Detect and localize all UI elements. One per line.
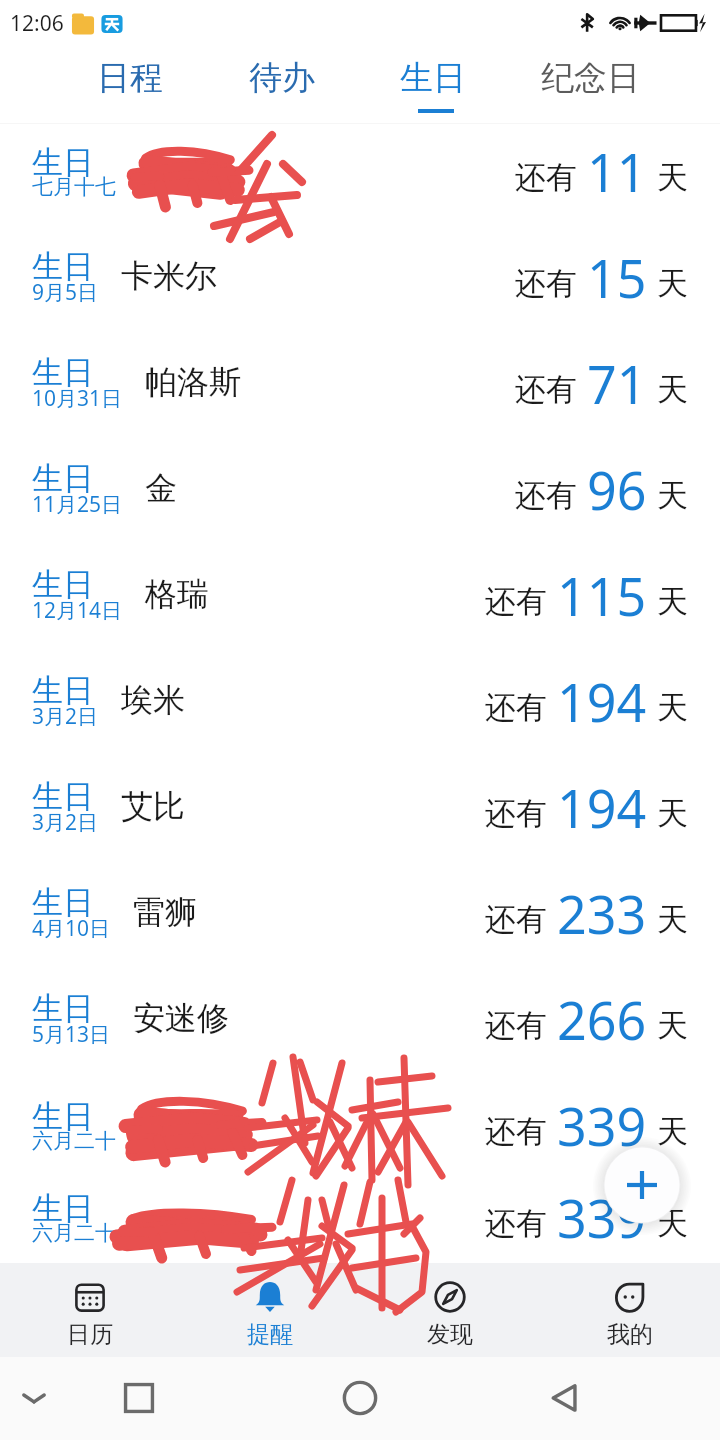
button[interactable]: 生日 <box>0 866 720 972</box>
staticText: 9月5日 <box>32 278 99 307</box>
button[interactable]: 我的 <box>540 1263 720 1357</box>
button[interactable]: 生日 <box>0 230 720 336</box>
button[interactable]: Home <box>330 1368 390 1428</box>
staticText: 格瑞 <box>145 574 209 614</box>
staticText: 天 <box>657 794 688 833</box>
staticText: 纪念日 <box>541 57 640 99</box>
staticText: 卡米尔 <box>121 256 217 296</box>
staticText: 生日 <box>32 247 94 286</box>
staticText: 金 <box>145 468 177 508</box>
button[interactable]: 生日 <box>0 654 720 760</box>
staticText: 生日 <box>32 777 94 816</box>
staticText: 10月31日 <box>32 384 123 413</box>
staticText: 天 <box>657 1204 688 1243</box>
staticText: 233 <box>557 878 647 949</box>
staticText: 还有 <box>485 582 547 621</box>
staticText: 天 <box>657 688 688 727</box>
staticText: 还有 <box>485 1112 547 1151</box>
button[interactable]: 生日 <box>0 760 720 866</box>
button[interactable]: Add <box>596 1139 688 1231</box>
staticText: 12:06 <box>10 9 64 38</box>
staticText: 生日 <box>400 57 466 99</box>
staticText: 天 <box>657 370 688 409</box>
staticText: 3月2日 <box>32 702 99 731</box>
button[interactable]: 生日 <box>0 124 720 230</box>
button[interactable]: 生日 <box>0 1078 720 1184</box>
staticText: 11 <box>587 136 647 207</box>
staticText: 安迷修 <box>133 998 229 1038</box>
staticText: 帕洛斯 <box>145 362 241 402</box>
staticText: 艾比 <box>121 786 185 826</box>
staticText: 266 <box>557 984 647 1055</box>
button[interactable]: Recent apps <box>109 1368 169 1428</box>
staticText: 生日 <box>32 1189 94 1228</box>
staticText: 天 <box>657 476 688 515</box>
staticText: 六月二十 <box>32 1128 116 1154</box>
staticText: 还有 <box>485 688 547 727</box>
button[interactable]: 生日 <box>0 442 720 548</box>
staticText: 生日 <box>32 1097 94 1136</box>
button[interactable]: 生日 <box>0 548 720 654</box>
staticText: 生日 <box>32 671 94 710</box>
staticText: 339 <box>557 1182 647 1253</box>
button[interactable]: Hide keyboard <box>4 1368 64 1428</box>
staticText: 还有 <box>485 1006 547 1045</box>
staticText: 提醒 <box>247 1320 293 1349</box>
staticText: 11月25日 <box>32 490 123 519</box>
staticText: 71 <box>587 348 647 419</box>
button[interactable]: 生日 <box>0 336 720 442</box>
staticText: 日历 <box>67 1320 113 1349</box>
staticText: 还有 <box>515 264 577 303</box>
button[interactable]: 生日 <box>0 1184 720 1263</box>
staticText: 194 <box>557 772 647 843</box>
staticText: 4月10日 <box>32 914 111 943</box>
staticText: 七月十七 <box>32 174 116 200</box>
staticText: 雷狮 <box>133 892 197 932</box>
button[interactable]: 提醒 <box>180 1263 360 1357</box>
staticText: 生日 <box>32 883 94 922</box>
staticText: 3月2日 <box>32 808 99 837</box>
staticText: 96 <box>587 454 647 525</box>
staticText: 六月二十 <box>32 1220 116 1246</box>
button[interactable]: 纪念日 <box>515 46 665 124</box>
button[interactable]: 日历 <box>0 1263 180 1357</box>
staticText: 115 <box>557 560 647 631</box>
staticText: 还有 <box>515 476 577 515</box>
staticText: 生日 <box>32 353 94 392</box>
staticText: 生日 <box>32 989 94 1028</box>
staticText: 天 <box>657 158 688 197</box>
staticText: 我的 <box>607 1320 653 1349</box>
button[interactable]: 生日 <box>0 972 720 1078</box>
staticText: 埃米 <box>121 680 185 720</box>
button[interactable]: 生日 <box>358 46 508 124</box>
button[interactable]: Back <box>536 1368 596 1428</box>
staticText: 194 <box>557 666 647 737</box>
staticText: 5月13日 <box>32 1020 111 1049</box>
staticText: 15 <box>587 242 647 313</box>
staticText: 还有 <box>485 900 547 939</box>
button[interactable]: 发现 <box>360 1263 540 1357</box>
staticText: 天 <box>657 1112 688 1151</box>
staticText: 生日 <box>32 565 94 604</box>
staticText: 生日 <box>32 143 94 182</box>
staticText: 还有 <box>515 370 577 409</box>
staticText: 天 <box>657 1006 688 1045</box>
staticText: 还有 <box>485 794 547 833</box>
button[interactable]: 日程 <box>55 46 205 124</box>
staticText: 发现 <box>427 1320 473 1349</box>
staticText: 天 <box>657 582 688 621</box>
staticText: 339 <box>557 1090 647 1161</box>
staticText: 天 <box>657 264 688 303</box>
staticText: 还有 <box>515 158 577 197</box>
staticText: 12月14日 <box>32 596 123 625</box>
staticText: 生日 <box>32 459 94 498</box>
staticText: 天 <box>657 900 688 939</box>
staticText: 待办 <box>249 57 315 99</box>
staticText: 还有 <box>485 1204 547 1243</box>
staticText: 日程 <box>97 57 163 99</box>
button[interactable]: 待办 <box>207 46 357 124</box>
